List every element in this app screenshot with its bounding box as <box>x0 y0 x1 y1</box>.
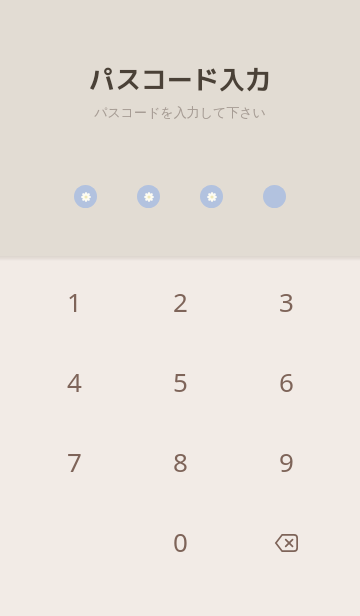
button[interactable]: 3 <box>233 261 339 341</box>
staticText: パスコード入力 <box>0 61 360 97</box>
button[interactable]: 9 <box>233 421 339 501</box>
staticText: 2 <box>173 284 188 319</box>
staticText: 1 <box>67 284 82 319</box>
button[interactable]: 7 <box>21 421 127 501</box>
staticText: 0 <box>173 524 188 559</box>
button[interactable]: Delete last digit <box>233 501 339 581</box>
button[interactable]: 0 <box>127 501 233 581</box>
staticText: 3 <box>279 284 294 319</box>
button[interactable]: 4 <box>21 341 127 421</box>
button[interactable]: 5 <box>127 341 233 421</box>
button[interactable]: 1 <box>21 261 127 341</box>
staticText: 7 <box>67 444 82 479</box>
staticText: パスコードを入力して下さい <box>0 104 360 120</box>
button[interactable]: 6 <box>233 341 339 421</box>
staticText: 6 <box>279 364 294 399</box>
staticText: 5 <box>173 364 188 399</box>
staticText: 9 <box>279 444 294 479</box>
button[interactable]: 8 <box>127 421 233 501</box>
staticText: 8 <box>173 444 188 479</box>
button[interactable]: 2 <box>127 261 233 341</box>
staticText: 4 <box>67 364 82 399</box>
